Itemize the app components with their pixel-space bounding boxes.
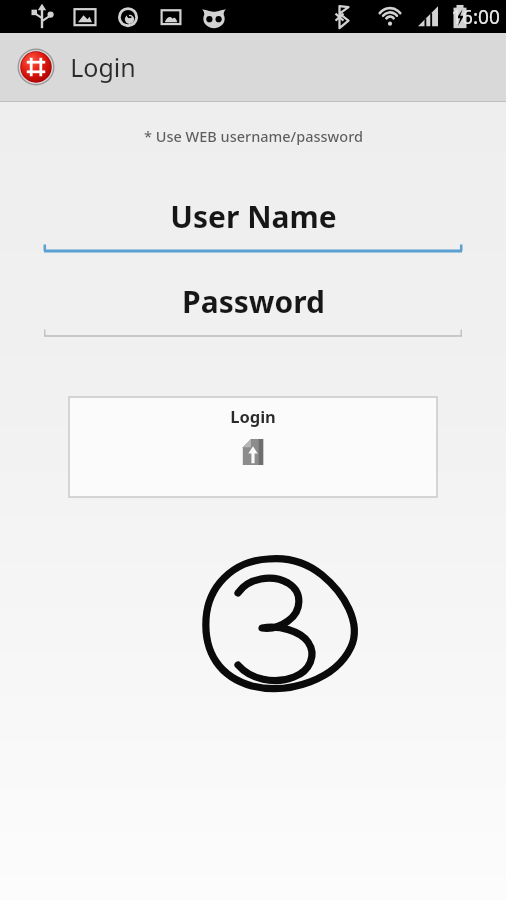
staticText: 16:00: [451, 4, 500, 30]
button[interactable]: Password: [0, 270, 506, 341]
staticText: User Name: [170, 196, 337, 237]
staticText: Password: [182, 281, 325, 322]
staticText: * Use WEB username/password: [144, 126, 363, 146]
staticText: Login: [230, 405, 276, 427]
button[interactable]: User Name: [0, 185, 506, 256]
staticText: Login: [70, 50, 136, 84]
button[interactable]: App icon: [16, 47, 56, 87]
button[interactable]: Login: [69, 397, 437, 497]
